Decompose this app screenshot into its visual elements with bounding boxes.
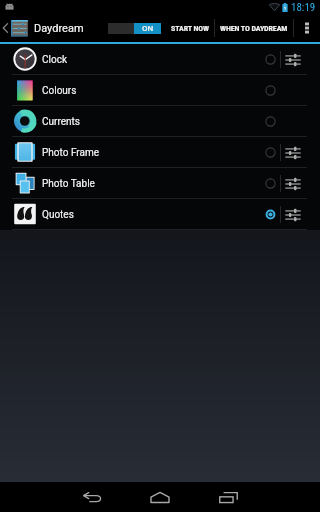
staticText: Photo Frame bbox=[42, 147, 99, 159]
staticText: WHEN TO DAYDREAM bbox=[220, 24, 288, 33]
button[interactable]: WHEN TO DAYDREAM bbox=[215, 14, 293, 42]
button[interactable]: Photo Frame bbox=[0, 137, 320, 168]
button[interactable]: Settings for Clock bbox=[281, 44, 305, 75]
button[interactable]: Colours bbox=[0, 75, 320, 106]
button[interactable]: Daydream bbox=[0, 14, 104, 42]
button[interactable]: Settings for Photo Table bbox=[281, 168, 305, 199]
button[interactable]: More options bbox=[294, 14, 320, 42]
button[interactable]: Recent apps bbox=[194, 482, 262, 512]
staticText: ON bbox=[142, 24, 154, 33]
staticText: Colours bbox=[42, 85, 77, 97]
button[interactable]: Back bbox=[58, 482, 126, 512]
staticText: START NOW bbox=[171, 24, 209, 33]
staticText: Photo Table bbox=[42, 178, 95, 190]
staticText: Daydream bbox=[34, 22, 84, 35]
staticText: Clock bbox=[42, 54, 67, 66]
button[interactable]: Currents bbox=[0, 106, 320, 137]
button[interactable]: Settings for Photo Frame bbox=[281, 137, 305, 168]
staticText: Quotes bbox=[42, 209, 74, 221]
button[interactable]: ON bbox=[108, 23, 161, 34]
button[interactable]: Clock bbox=[0, 44, 320, 75]
button[interactable]: Settings for Quotes bbox=[281, 199, 305, 230]
staticText: Currents bbox=[42, 116, 80, 128]
button[interactable]: Home bbox=[126, 482, 194, 512]
button[interactable]: START NOW bbox=[166, 14, 214, 42]
button[interactable]: Photo Table bbox=[0, 168, 320, 199]
button[interactable]: Quotes bbox=[0, 199, 320, 230]
staticText: 18:19 bbox=[291, 1, 316, 14]
